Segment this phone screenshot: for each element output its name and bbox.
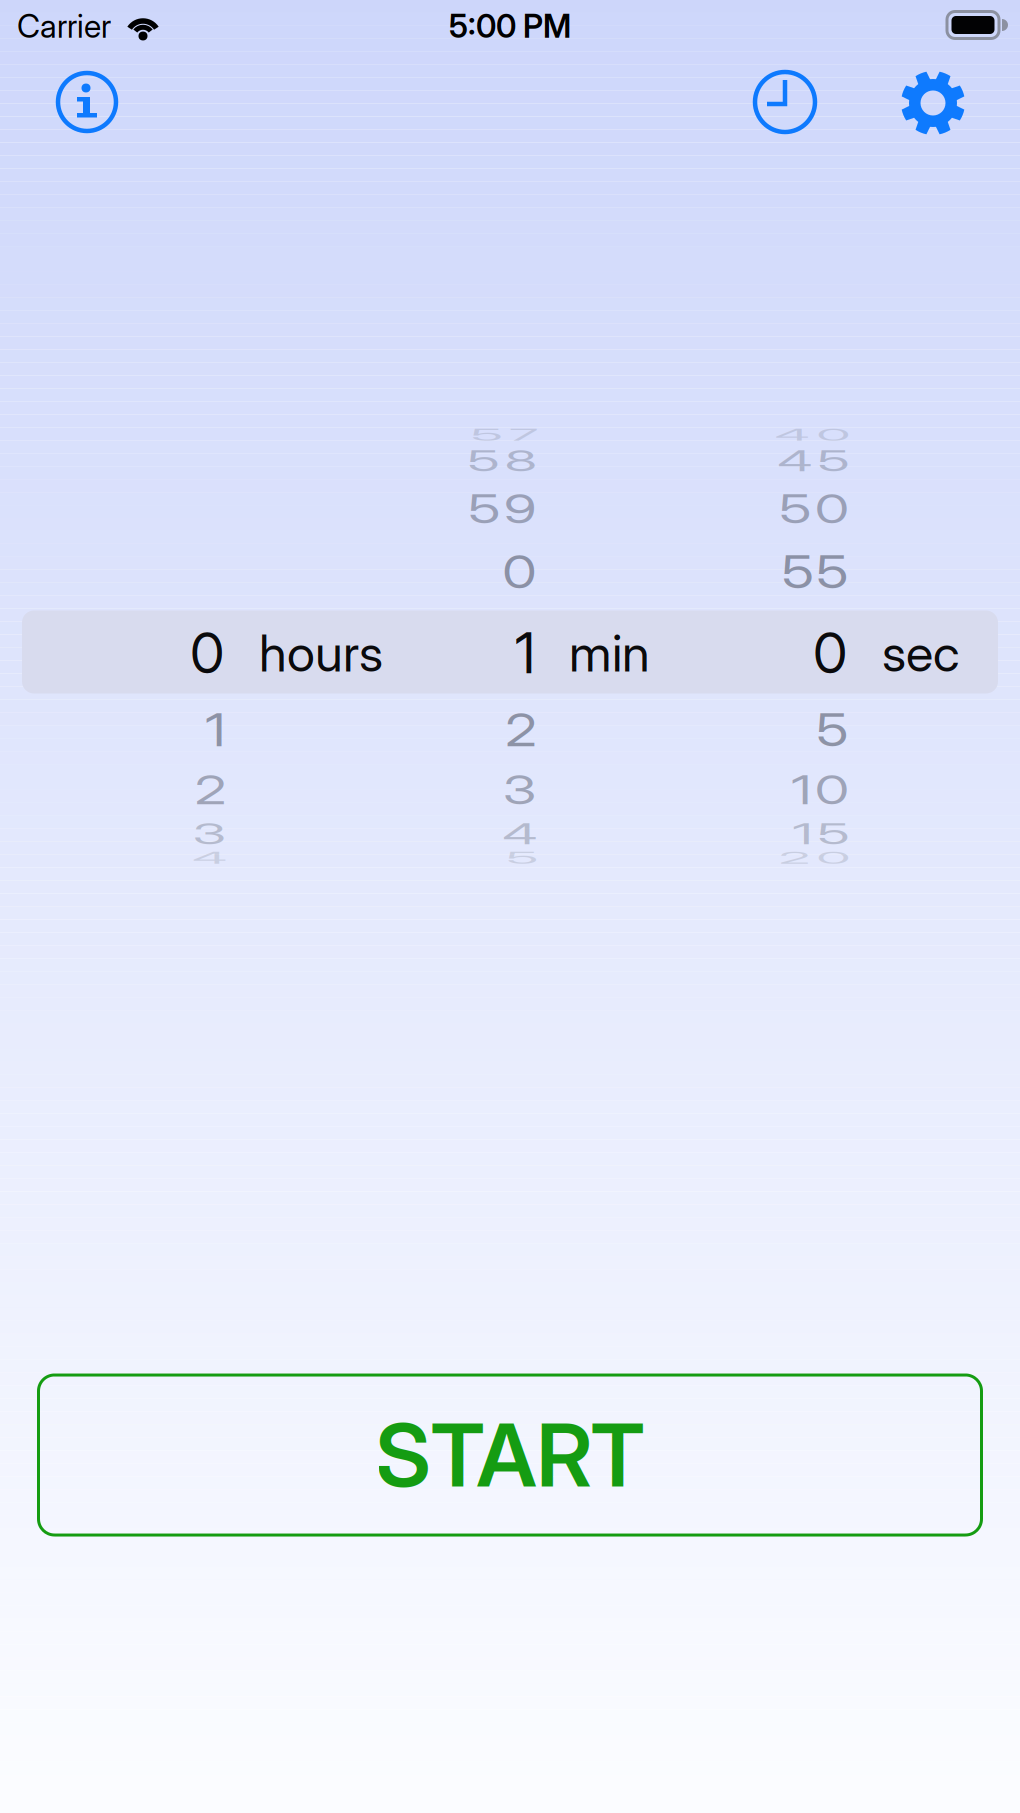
staticText: 55	[782, 539, 848, 605]
staticText: 57	[471, 402, 538, 468]
staticText: 5:00 PM	[449, 7, 571, 45]
staticText: 58	[467, 428, 537, 494]
staticText: 1	[515, 620, 535, 686]
staticText: 2	[505, 697, 536, 763]
staticText: 50	[779, 476, 849, 542]
staticText: 0	[813, 620, 847, 686]
staticText: 59	[468, 476, 537, 542]
staticText: 3	[192, 801, 226, 867]
button[interactable]: Settings	[897, 67, 969, 139]
staticText: 2	[195, 757, 226, 823]
staticText: hours	[259, 623, 383, 683]
staticText: 40	[775, 402, 850, 468]
staticText: min	[569, 623, 650, 683]
button[interactable]: Info	[52, 67, 122, 137]
button[interactable]: History	[750, 67, 820, 137]
staticText: START	[375, 1404, 644, 1506]
staticText: 4	[192, 825, 227, 891]
staticText: 15	[792, 801, 849, 867]
staticText: 20	[779, 825, 850, 891]
staticText: 3	[503, 757, 537, 823]
staticText: 0	[502, 539, 536, 605]
staticText: 0	[190, 620, 224, 686]
button[interactable]: START	[38, 1375, 981, 1535]
staticText: 5	[816, 697, 848, 763]
staticText: 4	[502, 801, 537, 867]
staticText: 10	[791, 757, 849, 823]
staticText: 5	[506, 825, 538, 891]
staticText: 1	[205, 697, 225, 763]
staticText: 45	[777, 428, 849, 494]
staticText: sec	[882, 623, 959, 683]
staticText: Carrier	[17, 7, 111, 45]
